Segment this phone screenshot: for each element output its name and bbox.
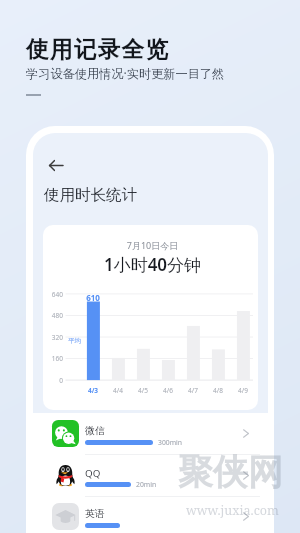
staticText: 4/4 <box>107 386 129 395</box>
button[interactable]: 微信 <box>33 413 268 454</box>
staticText: 320 <box>43 333 63 342</box>
staticText: 聚侠网 <box>178 450 283 494</box>
staticText: 4/8 <box>207 386 229 395</box>
staticText: 4/6 <box>157 386 179 395</box>
staticText: 4/9 <box>232 386 254 395</box>
staticText: 610 <box>82 292 104 303</box>
staticText: 4/5 <box>132 386 154 395</box>
button[interactable]: QQ <box>33 455 268 496</box>
staticText: 平均 <box>68 337 81 345</box>
staticText: 使用记录全览 <box>26 35 170 63</box>
staticText: 300min <box>158 438 182 447</box>
staticText: 480 <box>43 311 63 320</box>
staticText: 英语 <box>85 508 105 520</box>
staticText: QQ <box>85 467 101 480</box>
staticText: 640 <box>43 290 63 299</box>
staticText: 4/7 <box>182 386 204 395</box>
staticText: 1小时40分钟 <box>45 253 258 276</box>
staticText: 微信 <box>85 425 105 437</box>
staticText: www.juxia.com <box>186 502 279 519</box>
staticText: 4/3 <box>82 386 104 395</box>
button[interactable]: Back <box>43 152 69 178</box>
staticText: 160 <box>43 354 63 363</box>
staticText: 学习设备使用情况·实时更新一目了然 <box>26 65 225 82</box>
staticText: 20min <box>136 480 157 489</box>
button[interactable]: 英语 <box>33 497 268 533</box>
staticText: 使用时长统计 <box>44 185 137 205</box>
staticText: 7月10日今日 <box>45 239 258 251</box>
staticText: 0 <box>43 376 63 385</box>
